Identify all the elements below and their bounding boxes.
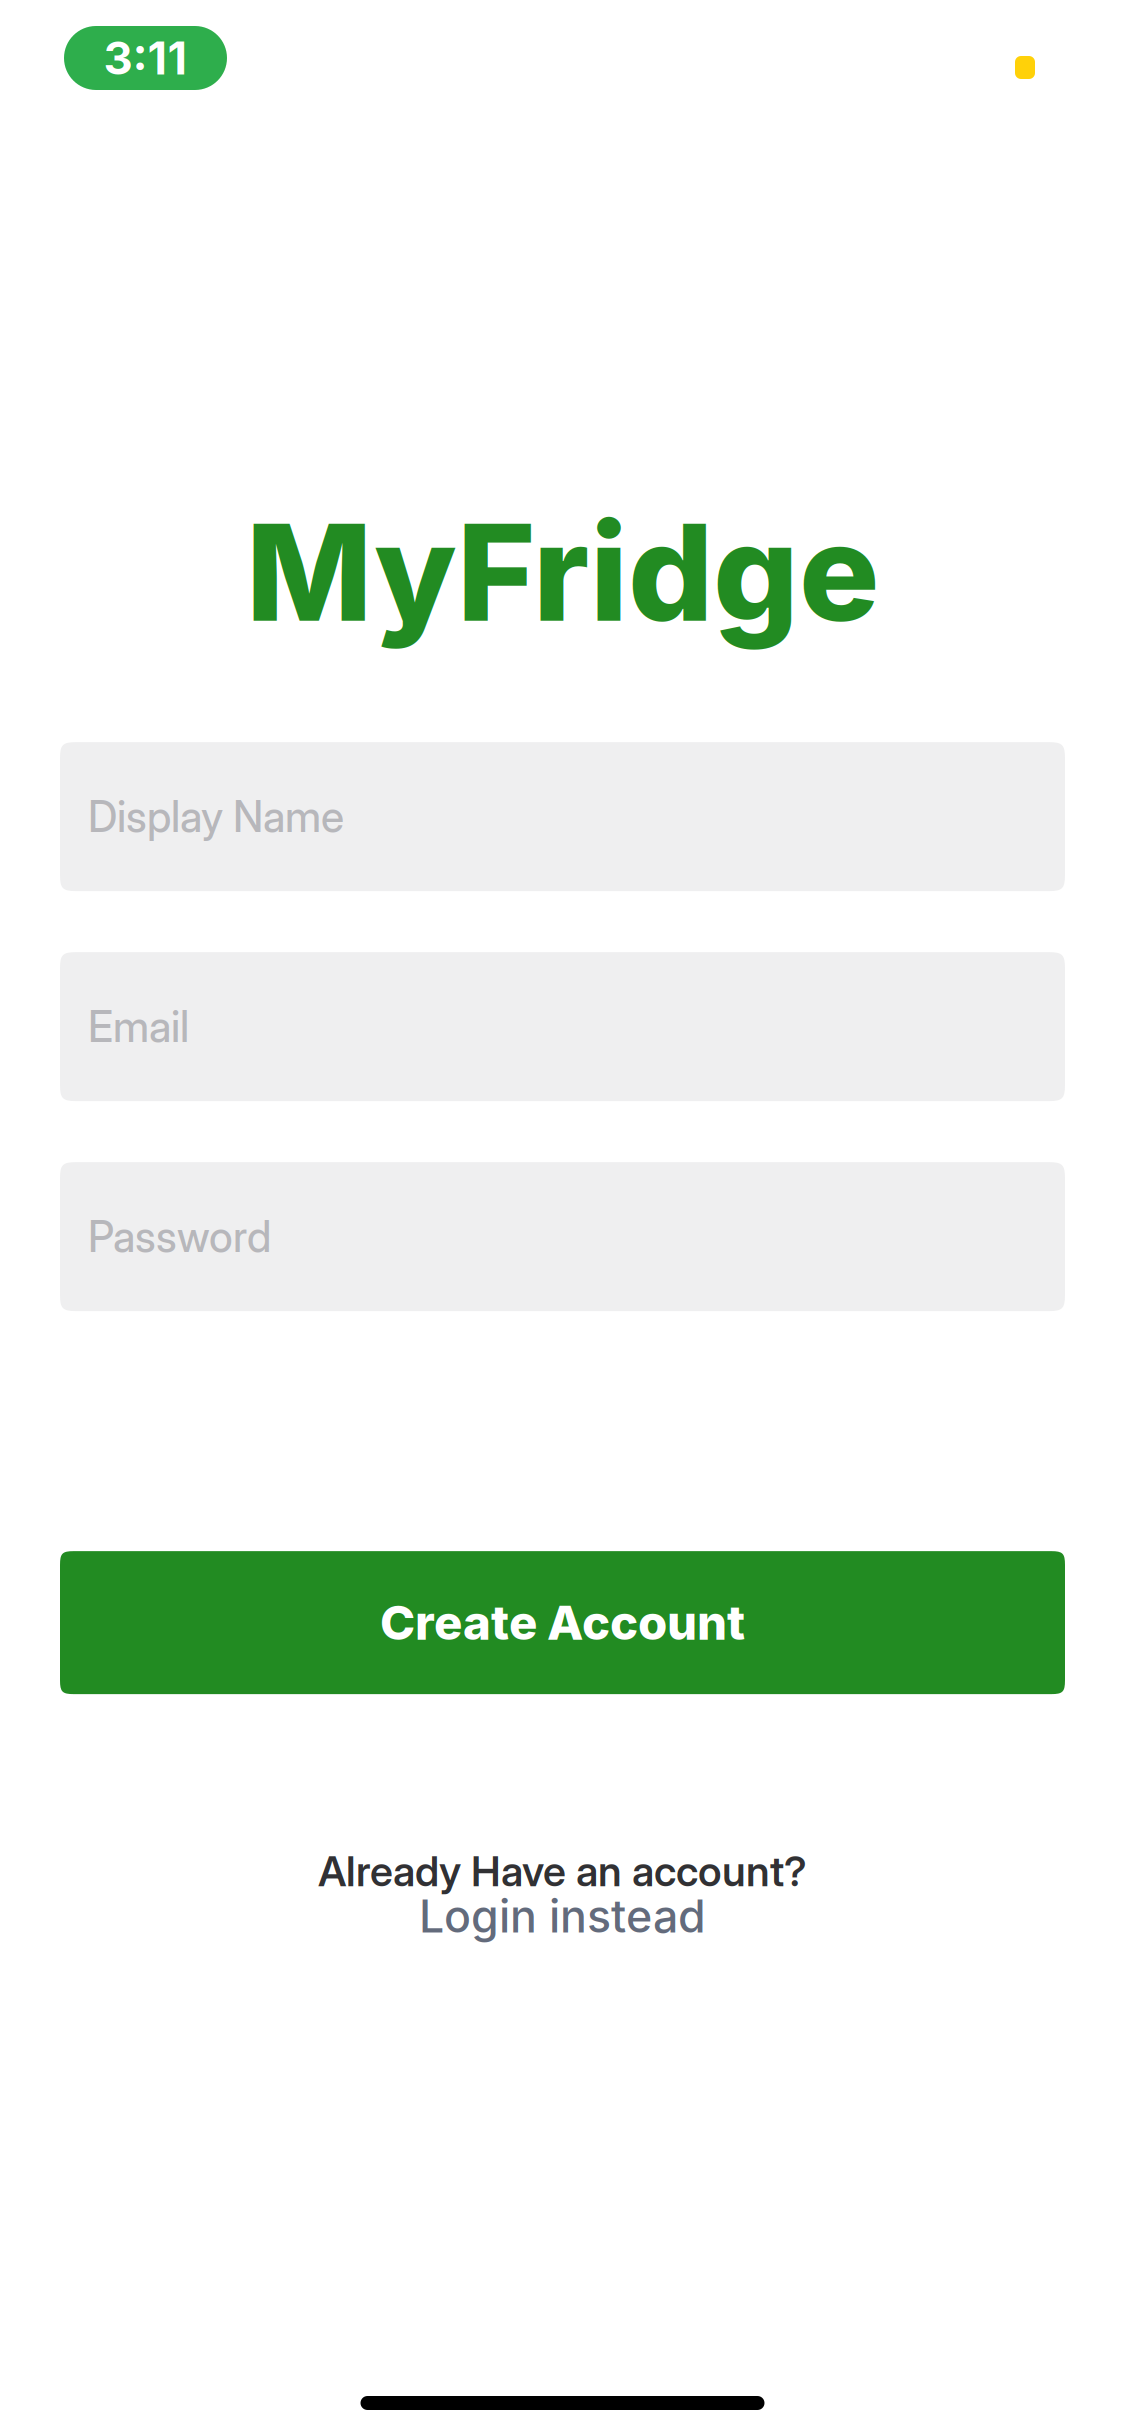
staticText: Login instead (419, 1889, 706, 1943)
button[interactable]: Display Name (60, 742, 1065, 891)
staticText: Email (88, 1001, 189, 1052)
staticText: 3:11 (103, 31, 187, 85)
button[interactable]: Email (60, 952, 1065, 1101)
button[interactable]: Password (60, 1162, 1065, 1311)
button[interactable]: Create Account (60, 1551, 1065, 1694)
staticText: Already Have an account? (318, 1846, 807, 1896)
button[interactable]: Login instead (419, 1889, 706, 1943)
staticText: MyFridge (246, 491, 879, 653)
staticText: Display Name (88, 791, 344, 842)
staticText: Password (88, 1211, 271, 1262)
staticText: Create Account (380, 1594, 745, 1651)
